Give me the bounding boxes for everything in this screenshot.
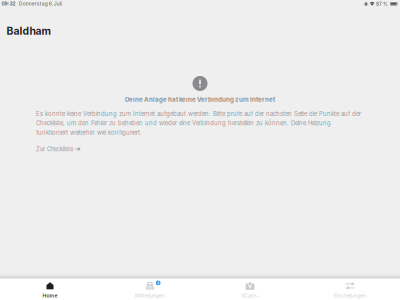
staticText: Donnerstag 6. Juli	[19, 1, 62, 7]
staticText: Zur Checkliste	[36, 145, 73, 153]
button[interactable]: Einstellungen	[300, 279, 400, 300]
staticText: Deine Anlage hat keine Verbindung zum In…	[125, 96, 275, 103]
staticText: 87 %	[376, 1, 388, 7]
staticText: VCare+	[241, 292, 259, 299]
button[interactable]: Home	[0, 279, 100, 300]
staticText: 4	[157, 280, 160, 285]
button[interactable]: 4	[100, 279, 200, 300]
staticText: Baldham	[7, 25, 51, 37]
staticText: 09:32	[1, 1, 15, 7]
staticText: Einstellungen	[334, 292, 366, 299]
staticText: Mitteilungen	[135, 292, 165, 299]
button[interactable]: VCare+	[200, 279, 300, 300]
staticText: Home	[42, 292, 57, 299]
button[interactable]: Zur Checkliste	[36, 145, 80, 153]
staticText: Es konnte keine Verbindung zum Internet …	[36, 110, 361, 136]
